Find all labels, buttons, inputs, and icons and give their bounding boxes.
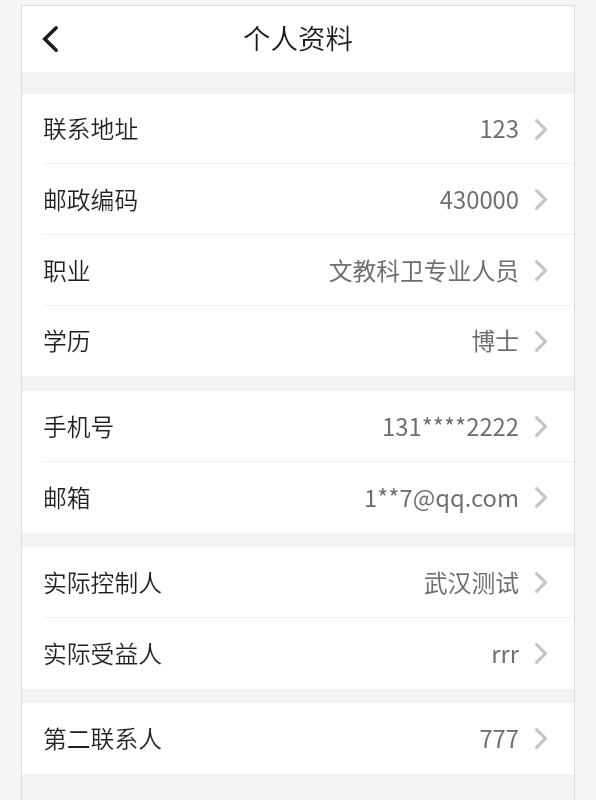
button[interactable]: 学历 xyxy=(22,306,574,376)
staticText: 博士 xyxy=(471,322,519,356)
staticText: 1**7@qq.com xyxy=(364,479,519,513)
staticText: 邮箱 xyxy=(43,479,91,513)
button[interactable]: 手机号 xyxy=(22,391,574,462)
staticText: 武汉测试 xyxy=(423,564,519,598)
button[interactable]: 邮箱 xyxy=(22,462,574,533)
button[interactable]: 联系地址 xyxy=(22,94,574,164)
staticText: 职业 xyxy=(43,252,91,286)
button[interactable]: 实际受益人 xyxy=(22,618,574,689)
button[interactable]: 职业 xyxy=(22,235,574,306)
staticText: 个人资料 xyxy=(243,17,353,57)
staticText: 学历 xyxy=(43,322,91,356)
button[interactable]: 实际控制人 xyxy=(22,547,574,618)
staticText: 手机号 xyxy=(43,408,115,442)
staticText: 430000 xyxy=(439,181,519,215)
button[interactable]: Back xyxy=(27,16,73,62)
button[interactable]: 邮政编码 xyxy=(22,164,574,235)
staticText: 实际受益人 xyxy=(43,635,162,669)
staticText: 131****2222 xyxy=(382,408,519,442)
staticText: 邮政编码 xyxy=(43,181,139,215)
staticText: 实际控制人 xyxy=(43,564,162,598)
staticText: 联系地址 xyxy=(43,110,139,144)
staticText: 文教科卫专业人员 xyxy=(328,252,519,286)
staticText: 第二联系人 xyxy=(43,720,162,754)
staticText: rrr xyxy=(491,635,519,669)
staticText: 123 xyxy=(479,110,519,144)
button[interactable]: 第二联系人 xyxy=(22,703,574,774)
staticText: 777 xyxy=(479,720,519,754)
